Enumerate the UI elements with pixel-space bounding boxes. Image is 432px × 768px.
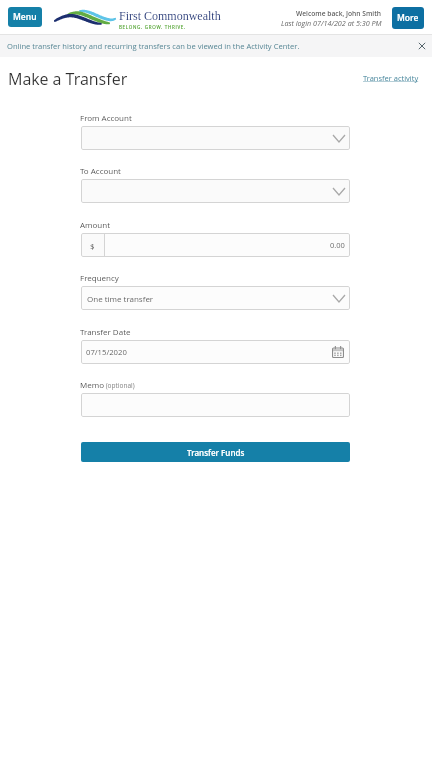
staticText: 0.00 xyxy=(330,240,345,250)
staticText: Make a Transfer xyxy=(8,68,128,90)
button[interactable]: To Account selector xyxy=(81,179,350,203)
staticText: Frequency xyxy=(80,272,119,283)
staticText: Online transfer history and recurring tr… xyxy=(7,41,300,51)
staticText: (optional) xyxy=(104,381,135,390)
button[interactable]: Dismiss notification xyxy=(418,42,426,50)
staticText: Welcome back, John Smith xyxy=(296,9,382,18)
staticText: Transfer Date xyxy=(80,326,131,337)
button[interactable]: One time transfer xyxy=(81,286,350,310)
staticText: Memo xyxy=(80,379,104,390)
button[interactable]: Transfer activity xyxy=(363,73,419,83)
button[interactable]: Transfer Funds xyxy=(81,442,350,462)
staticText: One time transfer xyxy=(87,293,154,304)
staticText: Transfer activity xyxy=(363,73,419,83)
staticText: Last login 07/14/202 at 5:30 PM xyxy=(281,18,382,28)
staticText: 07/15/2020 xyxy=(86,347,127,357)
staticText: $ xyxy=(90,240,95,251)
staticText: Menu xyxy=(13,11,37,23)
staticText: Transfer Funds xyxy=(187,447,245,458)
staticText: Amount xyxy=(80,219,110,230)
staticText: First Commonwealth xyxy=(119,9,221,22)
button[interactable]: From Account selector xyxy=(81,126,350,150)
staticText: More xyxy=(397,12,419,24)
other: First Commonwealth logo xyxy=(52,6,120,26)
staticText: To Account xyxy=(80,165,121,176)
staticText: BELONG. GROW. THRIVE. xyxy=(119,24,186,30)
button[interactable]: Memo input xyxy=(81,393,350,417)
button[interactable]: Menu xyxy=(8,7,42,27)
button[interactable]: $ xyxy=(81,233,350,257)
staticText: From Account xyxy=(80,112,132,123)
button[interactable]: 07/15/2020 xyxy=(81,340,350,364)
button[interactable]: More xyxy=(392,7,424,29)
